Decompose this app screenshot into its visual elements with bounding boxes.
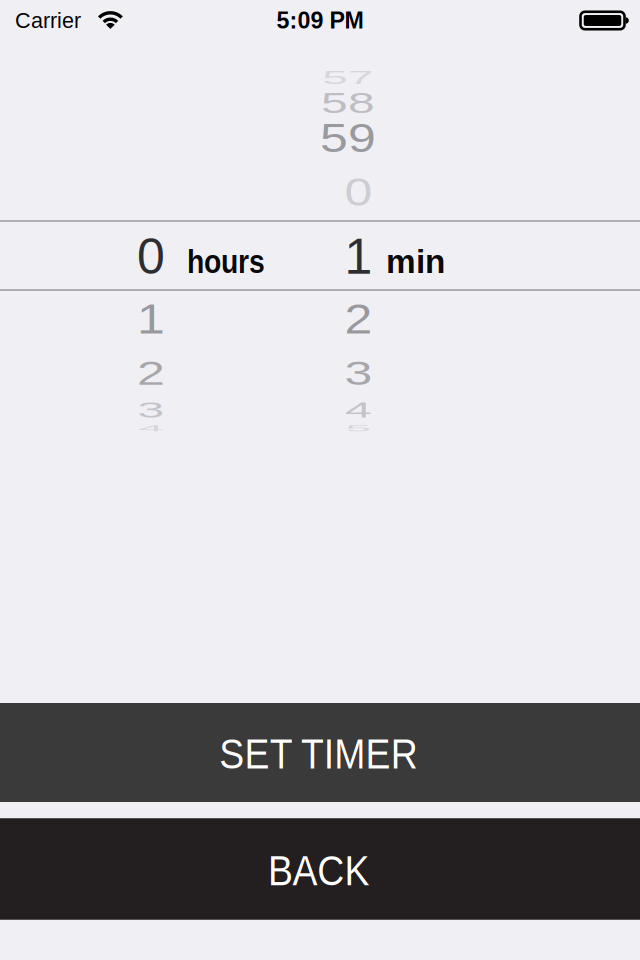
staticText: Carrier (15, 8, 81, 32)
staticText: 3 (137, 382, 165, 438)
button[interactable]: SET TIMER (0, 703, 640, 802)
staticText: 0 (344, 164, 372, 220)
button[interactable]: BACK (0, 818, 640, 920)
staticText: 4 (137, 400, 165, 456)
staticText: 3 (344, 345, 372, 401)
staticText: hours (180, 243, 272, 280)
staticText: 57 (320, 50, 376, 106)
staticText: min (386, 243, 445, 280)
staticText: 0 (137, 229, 165, 284)
staticText: SET TIMER (204, 730, 432, 778)
staticText: 2 (344, 291, 372, 347)
staticText: 5:09 PM (276, 7, 363, 33)
staticText: 1 (344, 229, 372, 284)
staticText: 2 (137, 345, 165, 401)
staticText: 1 (137, 291, 165, 347)
staticText: 5 (344, 400, 372, 456)
staticText: BACK (261, 847, 376, 894)
staticText: 59 (320, 110, 376, 166)
staticText: 58 (320, 75, 376, 130)
staticText: 4 (344, 382, 372, 438)
